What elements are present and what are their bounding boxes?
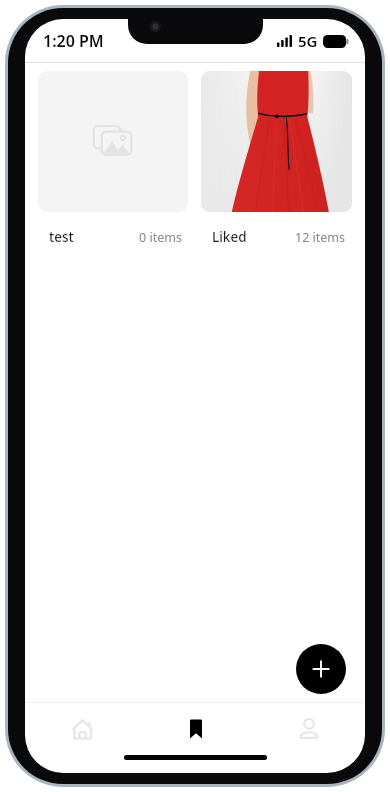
button[interactable]: Profile: [252, 703, 365, 755]
button[interactable]: Add collection: [296, 644, 346, 694]
button[interactable]: Collections: [139, 703, 252, 755]
staticText: test: [49, 228, 74, 246]
button[interactable]: Liked: [201, 71, 352, 246]
staticText: 1:20 PM: [43, 30, 104, 52]
staticText: 5G: [298, 31, 318, 51]
button[interactable]: Home: [25, 703, 139, 755]
staticText: 0 items: [139, 229, 182, 246]
staticText: 12 items: [295, 229, 346, 246]
staticText: Liked: [212, 228, 247, 246]
button[interactable]: test: [38, 71, 188, 246]
